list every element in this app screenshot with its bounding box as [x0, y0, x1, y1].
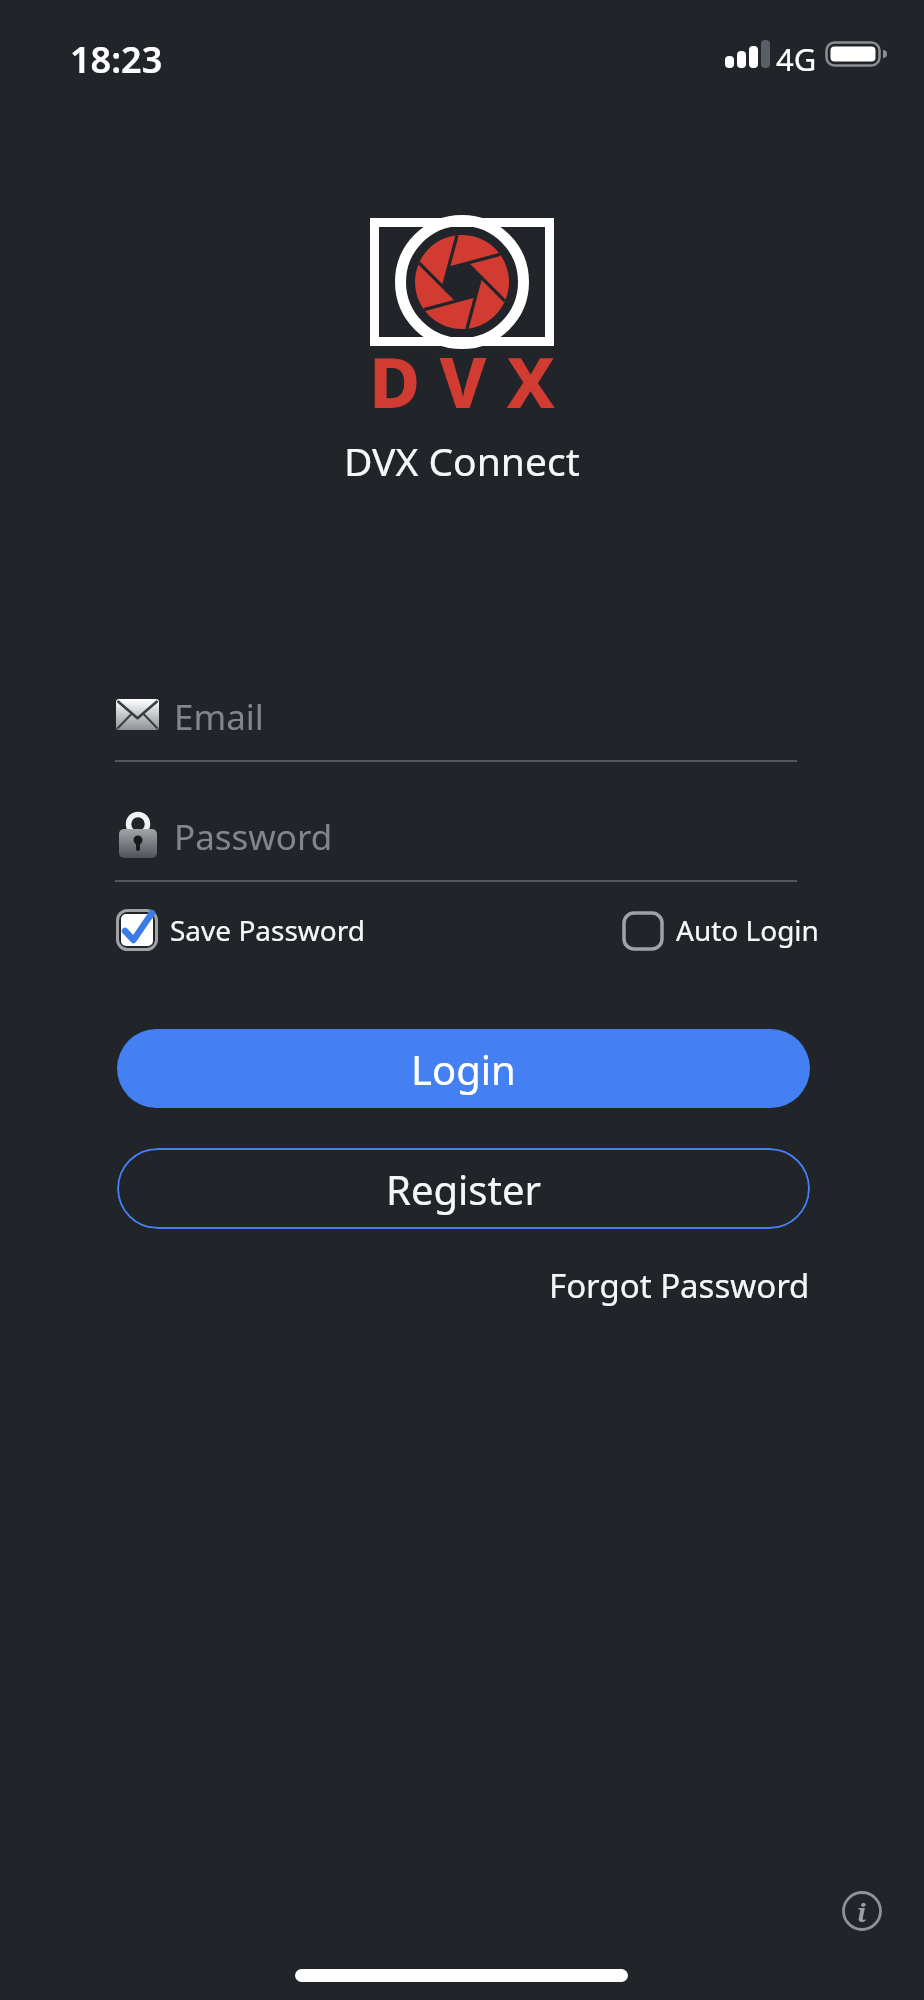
staticText: 18:23	[70, 35, 163, 75]
button[interactable]: Save Password	[116, 907, 416, 953]
staticText: Email	[174, 693, 264, 735]
staticText: Register	[386, 1162, 542, 1216]
staticText: i	[857, 1894, 867, 1929]
button[interactable]: Register	[117, 1148, 810, 1229]
staticText: Save Password	[170, 911, 366, 949]
staticText: Forgot Password	[549, 1263, 810, 1308]
button[interactable]: i	[840, 1889, 884, 1933]
staticText: DVX	[369, 333, 576, 413]
button[interactable]: Login	[117, 1029, 810, 1108]
button[interactable]: Auto Login	[622, 907, 842, 953]
staticText: DVX Connect	[344, 434, 580, 484]
staticText: 4G	[776, 38, 817, 68]
button[interactable]: Forgot Password	[450, 1262, 810, 1308]
staticText: Auto Login	[676, 911, 819, 949]
staticText: Password	[174, 813, 333, 855]
staticText: Login	[411, 1042, 516, 1096]
